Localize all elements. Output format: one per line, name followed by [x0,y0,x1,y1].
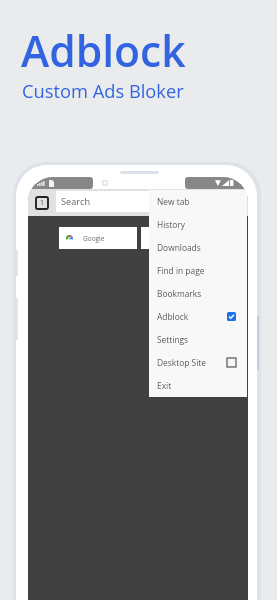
staticText: Custom Ads Bloker [22,78,184,103]
button[interactable]: Exit [149,374,247,397]
staticText: Search [61,195,91,208]
staticText: Google [83,234,105,243]
staticText: Find in page [157,265,205,276]
button[interactable]: Settings [149,328,247,351]
button[interactable]: Tabs [36,197,48,209]
button[interactable]: Desktop Site [149,351,247,374]
staticText: Desktop Site [157,357,206,368]
staticText: Downloads [157,242,201,253]
button[interactable]: Adblock [149,305,247,328]
button[interactable]: Search [56,191,246,212]
button[interactable]: Find in page [149,259,247,282]
staticText: History [157,219,185,230]
staticText: New tab [157,196,190,207]
button[interactable]: New tab [149,190,247,213]
button[interactable]: History [149,213,247,236]
staticText: 1 [40,198,45,208]
staticText: Exit [157,380,172,391]
staticText: Settings [157,334,189,345]
staticText: Bookmarks [157,288,202,299]
staticText: Adblock [157,311,189,322]
button[interactable]: Downloads [149,236,247,259]
staticText: Adblock [21,21,186,79]
button[interactable]: Google [59,227,137,249]
button[interactable]: Bookmarks [149,282,247,305]
